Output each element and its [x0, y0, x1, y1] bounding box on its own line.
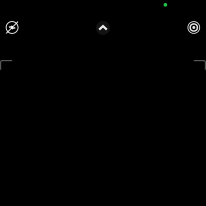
button[interactable]: Live Photo	[181, 14, 206, 40]
button[interactable]: Control Center	[90, 15, 116, 41]
button[interactable]: Flash off	[0, 14, 25, 40]
